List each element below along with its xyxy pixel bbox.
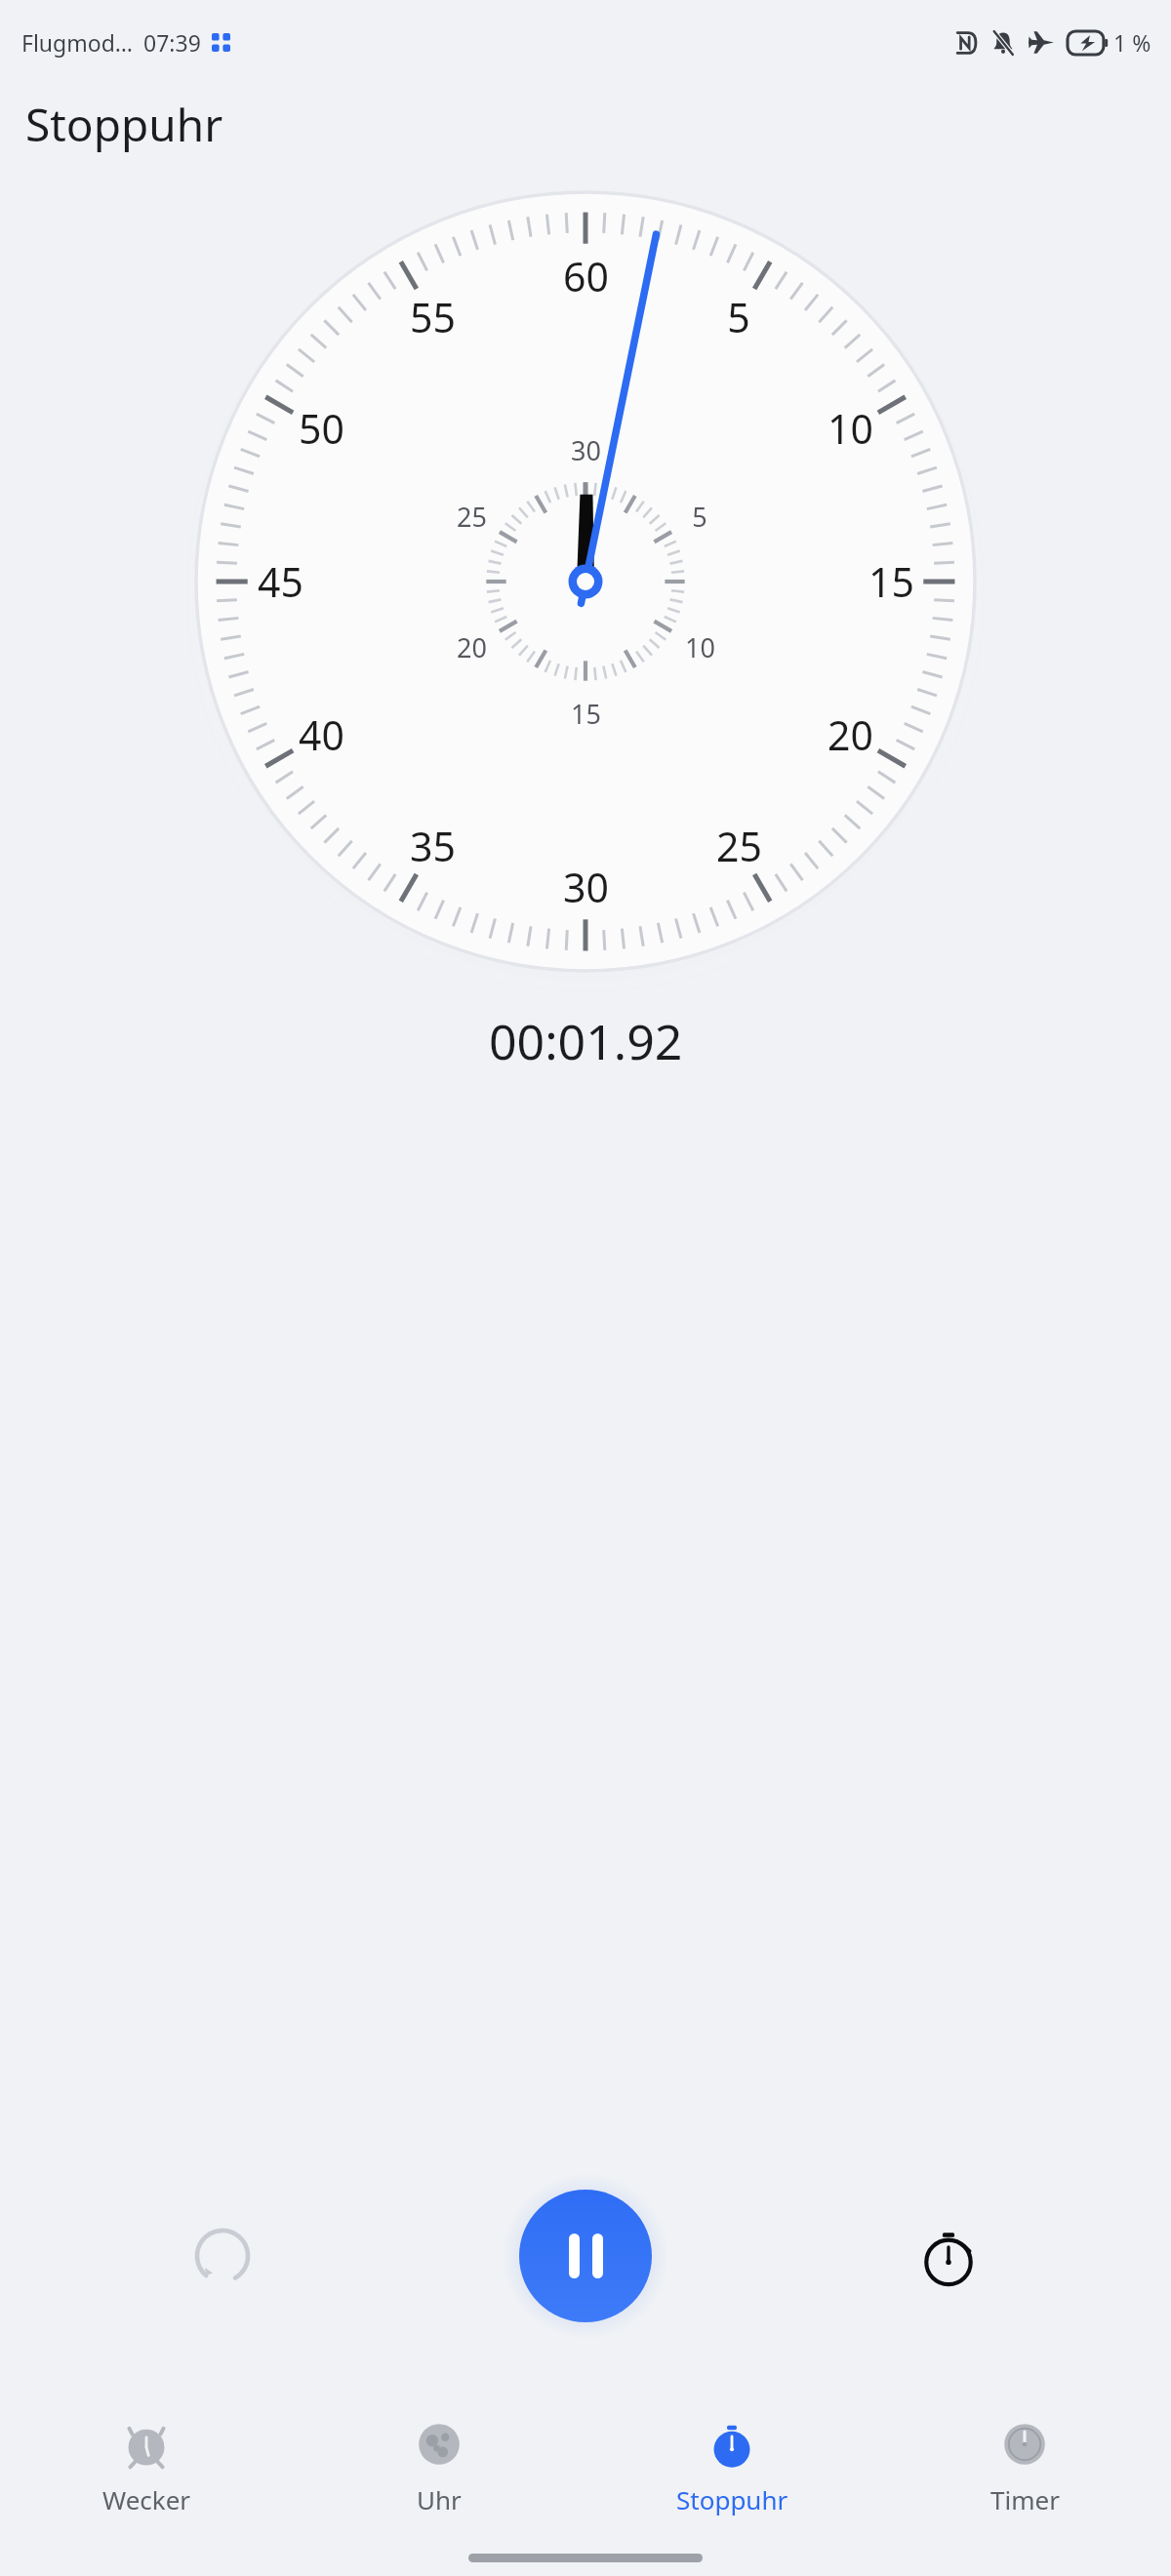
staticText: 5	[692, 499, 707, 535]
staticText: Stoppuhr	[25, 94, 223, 155]
staticText: Uhr	[417, 2482, 462, 2516]
staticText: 25	[716, 819, 762, 873]
staticText: 5	[727, 290, 750, 344]
staticText: Flugmod…	[21, 27, 133, 58]
button[interactable]: Lap	[902, 2209, 995, 2303]
staticText: 60	[563, 249, 609, 303]
button[interactable]: Pause	[519, 2190, 652, 2322]
staticText: Timer	[990, 2482, 1060, 2516]
staticText: 10	[685, 629, 715, 665]
staticText: Stoppuhr	[676, 2482, 788, 2516]
staticText: 15	[571, 696, 601, 732]
staticText: 1 %	[1113, 27, 1151, 58]
button[interactable]: Wecker	[0, 2394, 293, 2540]
staticText: 20	[828, 707, 873, 762]
staticText: 40	[299, 707, 344, 762]
staticText: 00:01.92	[489, 1008, 683, 1074]
staticText: 15	[868, 554, 914, 609]
staticText: 45	[258, 554, 303, 609]
button[interactable]: Timer	[878, 2394, 1171, 2540]
staticText: Wecker	[102, 2482, 191, 2516]
staticText: 07:39	[143, 27, 201, 58]
staticText: 55	[410, 290, 456, 344]
button[interactable]: Uhr	[293, 2394, 585, 2540]
staticText: 30	[571, 432, 601, 468]
button[interactable]: Reset	[176, 2209, 269, 2303]
staticText: 20	[457, 629, 487, 665]
staticText: 50	[299, 401, 344, 456]
staticText: 35	[410, 819, 456, 873]
staticText: 30	[563, 860, 609, 914]
button[interactable]: Stoppuhr	[585, 2394, 878, 2540]
staticText: 10	[828, 401, 873, 456]
staticText: 25	[457, 499, 487, 535]
